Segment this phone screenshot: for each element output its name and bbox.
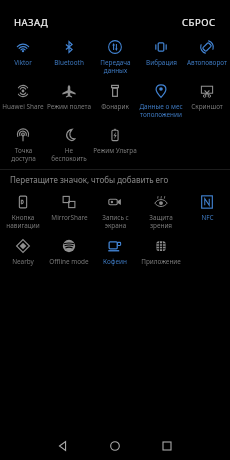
button[interactable]: Кофеин xyxy=(92,237,138,279)
staticText: Данные о мес тоположении xyxy=(139,102,183,119)
staticText: Offline mode xyxy=(49,257,89,266)
button[interactable]: Защита зрения xyxy=(138,193,184,235)
button[interactable]: Режим полета xyxy=(46,82,92,124)
button[interactable]: Автоповорот xyxy=(184,38,230,80)
staticText: НАЗАД xyxy=(14,16,49,29)
button[interactable]: Back xyxy=(51,434,75,458)
button[interactable]: Режим Ультра xyxy=(92,126,138,168)
button[interactable]: Nearby xyxy=(0,237,46,279)
button[interactable]: Offline mode xyxy=(46,237,92,279)
button[interactable]: Viktor xyxy=(0,38,46,80)
button[interactable]: Приложение xyxy=(138,237,184,279)
button[interactable]: Huawei Share xyxy=(0,82,46,124)
staticText: Huawei Share xyxy=(2,102,44,111)
button[interactable]: СБРОС xyxy=(176,12,222,33)
button[interactable]: NFC xyxy=(184,193,230,235)
staticText: СБРОС xyxy=(182,16,216,29)
staticText: Скриншот xyxy=(191,102,223,111)
button[interactable]: Точка доступа xyxy=(0,126,46,168)
button[interactable]: Не беспокоить xyxy=(46,126,92,168)
staticText: Приложение xyxy=(141,257,181,266)
button[interactable]: Фонарик xyxy=(92,82,138,124)
button[interactable]: Recents xyxy=(155,434,179,458)
staticText: NFC xyxy=(201,213,214,222)
button[interactable]: Bluetooth xyxy=(46,38,92,80)
button[interactable]: Передача данных xyxy=(92,38,138,80)
staticText: Вибрация xyxy=(146,58,177,67)
staticText: Viktor xyxy=(14,58,32,67)
staticText: Передача данных xyxy=(100,58,131,75)
staticText: Автоповорот xyxy=(187,58,227,67)
staticText: Фонарик xyxy=(101,102,129,111)
button[interactable]: Home xyxy=(103,434,127,458)
staticText: Не беспокоить xyxy=(51,146,87,163)
staticText: Запись с экрана xyxy=(102,213,129,230)
staticText: Кофеин xyxy=(103,257,127,266)
button[interactable]: Данные о мес тоположении xyxy=(138,82,184,124)
staticText: Перетащите значок, чтобы добавить его xyxy=(10,174,169,185)
staticText: Защита зрения xyxy=(149,213,173,230)
staticText: Bluetooth xyxy=(54,58,84,67)
staticText: Кнопка навигации xyxy=(6,213,40,230)
staticText: Режим Ультра xyxy=(93,146,137,155)
button[interactable]: НАЗАД xyxy=(8,12,55,33)
staticText: MirrorShare xyxy=(51,213,88,222)
button[interactable]: Вибрация xyxy=(138,38,184,80)
staticText: Точка доступа xyxy=(11,146,36,163)
staticText: Nearby xyxy=(12,257,34,266)
button[interactable]: Запись с экрана xyxy=(92,193,138,235)
button[interactable]: Скриншот xyxy=(184,82,230,124)
button[interactable]: MirrorShare xyxy=(46,193,92,235)
button[interactable]: Кнопка навигации xyxy=(0,193,46,235)
staticText: Режим полета xyxy=(47,102,91,111)
